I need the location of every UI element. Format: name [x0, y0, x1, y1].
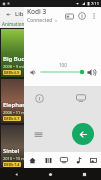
- button[interactable]: Library: [40, 152, 56, 168]
- staticText: Connected: [27, 17, 53, 24]
- staticText: 2010 • 15 min: [3, 156, 29, 161]
- button[interactable]: Big Buck Bunny: [1, 29, 100, 77]
- button[interactable]: Info: [76, 10, 88, 22]
- staticText: 100: [59, 62, 67, 68]
- button[interactable]: Menu: [31, 127, 45, 141]
- button[interactable]: Elephants Dream: [1, 79, 100, 123]
- button[interactable]: Recents: [67, 168, 101, 180]
- button[interactable]: Back: [72, 123, 94, 145]
- button[interactable]: Back: [0, 168, 33, 180]
- button[interactable]: More options: [89, 11, 99, 21]
- staticText: Elephants Dream: [3, 101, 53, 109]
- button[interactable]: Video: [56, 152, 71, 168]
- staticText: Kodi 3: [27, 7, 47, 16]
- button[interactable]: Pictures: [86, 152, 101, 168]
- staticText: 2008 • 9 min: [3, 64, 27, 69]
- button[interactable]: [39, 66, 85, 78]
- staticText: Big Buck Bunny: [3, 55, 48, 63]
- button[interactable]: Home: [24, 152, 40, 168]
- staticText: IMDb 6.5: [4, 70, 20, 75]
- button[interactable]: Display: [74, 91, 88, 105]
- staticText: IMDb 6.7: [4, 116, 20, 121]
- staticText: 7:11: [91, 1, 99, 6]
- button[interactable]: Volume up: [85, 66, 97, 78]
- button[interactable]: Home: [33, 168, 67, 180]
- staticText: IMDb 7.4: [4, 162, 20, 167]
- staticText: Animation: [2, 21, 25, 27]
- staticText: 2006 • 11 min: [3, 110, 29, 115]
- staticText: Sintel: [3, 147, 20, 155]
- button[interactable]: Back: [3, 9, 13, 19]
- staticText: Lib: [15, 10, 24, 18]
- button[interactable]: Music: [71, 152, 86, 168]
- button[interactable]: Volume down: [28, 67, 39, 78]
- button[interactable]: Sintel: [1, 125, 100, 169]
- button[interactable]: Cast: [63, 10, 75, 22]
- button[interactable]: Info: [32, 91, 46, 105]
